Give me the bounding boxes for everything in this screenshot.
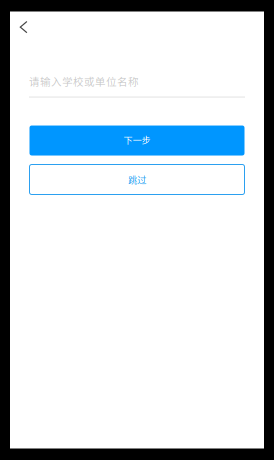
- button[interactable]: 下一步: [29, 125, 244, 155]
- button[interactable]: 跳过: [29, 164, 244, 194]
- staticText: 跳过: [128, 173, 146, 186]
- staticText: 请输入学校或单位名称: [29, 73, 139, 89]
- button[interactable]: Back: [10, 14, 38, 40]
- textField[interactable]: 请输入学校或单位名称: [29, 73, 245, 109]
- staticText: 下一步: [123, 133, 150, 146]
